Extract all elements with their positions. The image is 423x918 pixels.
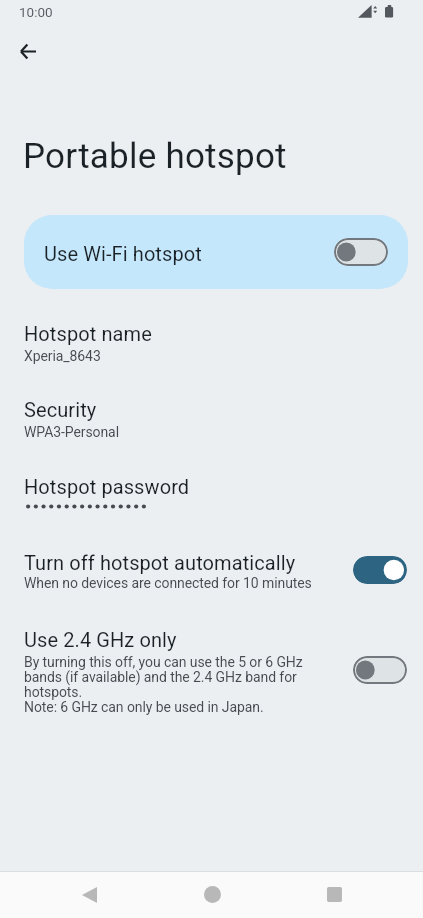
button[interactable]: Back xyxy=(9,32,47,70)
button[interactable]: Security xyxy=(0,398,423,444)
staticText: Hotspot password xyxy=(24,475,190,499)
button[interactable]: Off xyxy=(334,238,388,266)
staticText: WPA3-Personal xyxy=(24,425,119,440)
staticText: Use Wi-Fi hotspot xyxy=(44,242,202,266)
staticText: Xperia_8643 xyxy=(24,349,101,364)
button[interactable]: Recent apps xyxy=(310,871,358,918)
staticText: When no devices are connected for 10 min… xyxy=(24,576,312,591)
button[interactable]: Home xyxy=(188,871,236,918)
staticText: 10:00 xyxy=(19,4,53,20)
staticText: Security xyxy=(24,398,97,422)
staticText: Portable hotspot xyxy=(23,135,287,176)
button[interactable]: Hotspot name xyxy=(0,322,423,368)
button[interactable]: Use Wi-Fi hotspot xyxy=(24,215,408,289)
staticText: Turn off hotspot automatically xyxy=(24,551,296,575)
staticText: Hotspot name xyxy=(24,322,152,346)
staticText: By turning this off, you can use the 5 o… xyxy=(24,655,326,715)
button[interactable]: Back xyxy=(65,871,113,918)
staticText: Use 2.4 GHz only xyxy=(24,628,177,652)
button[interactable]: On xyxy=(353,556,407,584)
button[interactable]: Off xyxy=(353,656,407,684)
